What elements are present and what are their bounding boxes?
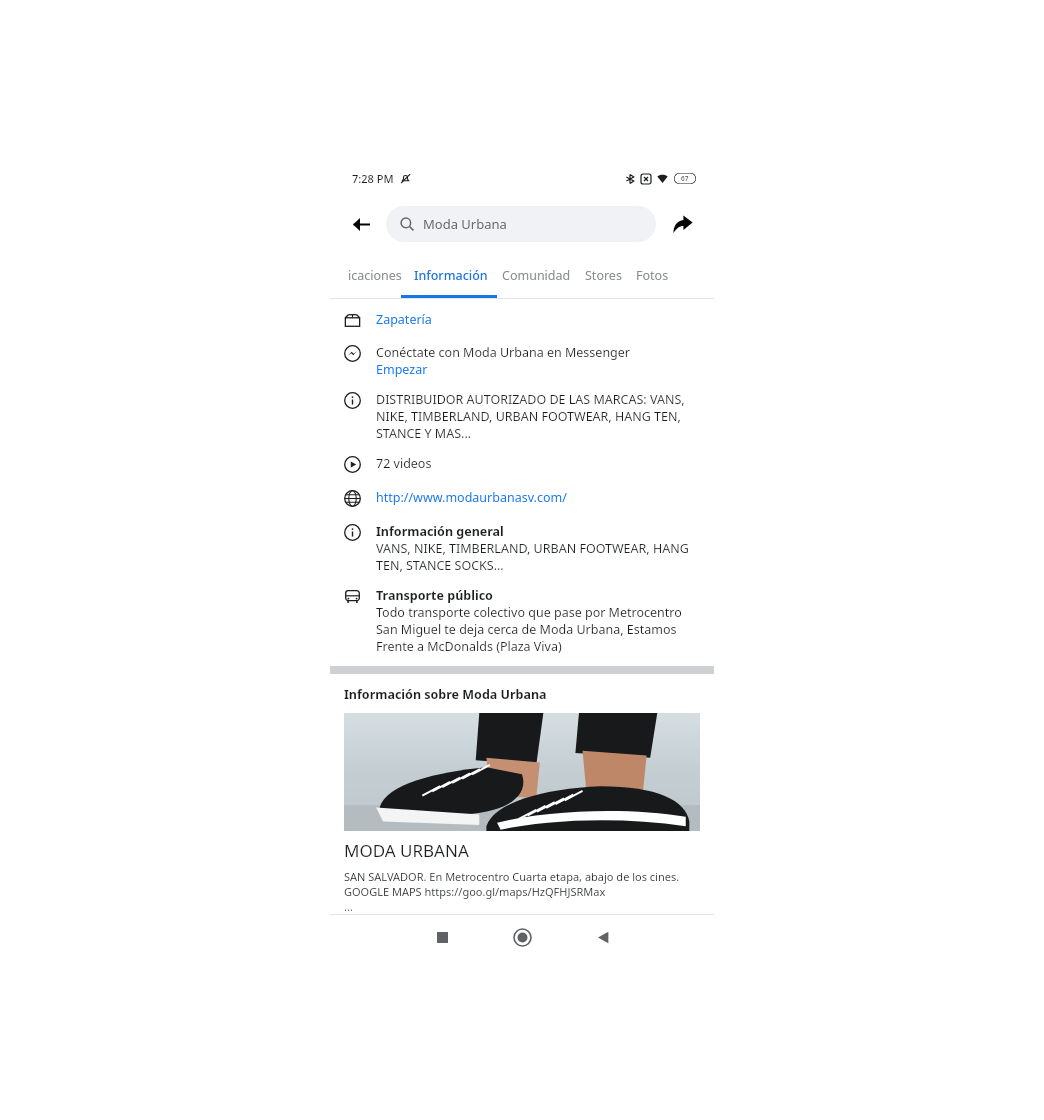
button[interactable]: DISTRIBUIDOR AUTORIZADO DE LAS MARCAS: V… <box>330 382 714 446</box>
button[interactable]: Recent apps <box>402 915 482 960</box>
button[interactable]: Back <box>562 915 642 960</box>
staticText: Todo transporte colectivo que pase por M… <box>376 604 700 655</box>
staticText: Stores <box>585 267 622 284</box>
button[interactable]: Share <box>666 207 700 241</box>
staticText: Conéctate con Moda Urbana en Messenger <box>376 344 631 361</box>
button[interactable]: Zapatería <box>330 305 714 337</box>
button[interactable]: Back <box>344 207 378 241</box>
staticText: SAN SALVADOR. En Metrocentro Cuarta etap… <box>344 869 700 899</box>
button[interactable]: Home <box>482 915 562 960</box>
button[interactable]: Comunidad <box>502 252 571 298</box>
staticText: Comunidad <box>502 267 571 284</box>
staticText: 67 <box>681 174 689 183</box>
staticText: ... <box>344 899 353 914</box>
button[interactable]: Información general <box>330 514 714 578</box>
staticText: 7:28 PM <box>352 171 394 186</box>
staticText: http://www.modaurbanasv.com/ <box>376 489 567 506</box>
button[interactable]: 72 videos <box>330 446 714 480</box>
button[interactable]: Información <box>414 252 488 298</box>
staticText: icaciones <box>348 267 402 284</box>
staticText: Moda Urbana <box>423 215 507 233</box>
button[interactable]: Conéctate con Moda Urbana en Messenger <box>330 337 714 382</box>
button[interactable]: icaciones <box>330 252 402 298</box>
button[interactable]: Transporte público <box>330 578 714 659</box>
staticText: Zapatería <box>376 311 432 328</box>
staticText: Empezar <box>376 361 428 378</box>
staticText: DISTRIBUIDOR AUTORIZADO DE LAS MARCAS: V… <box>376 391 700 442</box>
button[interactable]: Moda Urbana <box>386 206 656 242</box>
staticText: VANS, NIKE, TIMBERLAND, URBAN FOOTWEAR, … <box>376 540 700 574</box>
button[interactable]: http://www.modaurbanasv.com/ <box>330 480 714 514</box>
staticText: Fotos <box>636 267 669 284</box>
button[interactable]: Stores <box>585 252 622 298</box>
staticText: Transporte público <box>376 587 493 604</box>
staticText: Información general <box>376 523 504 540</box>
staticText: 72 videos <box>376 455 432 472</box>
staticText: MODA URBANA <box>344 839 469 862</box>
staticText: Información sobre Moda Urbana <box>344 686 547 703</box>
button[interactable]: Cover photo <box>344 713 700 831</box>
staticText: Información <box>414 267 488 284</box>
button[interactable]: Fotos <box>636 252 669 298</box>
